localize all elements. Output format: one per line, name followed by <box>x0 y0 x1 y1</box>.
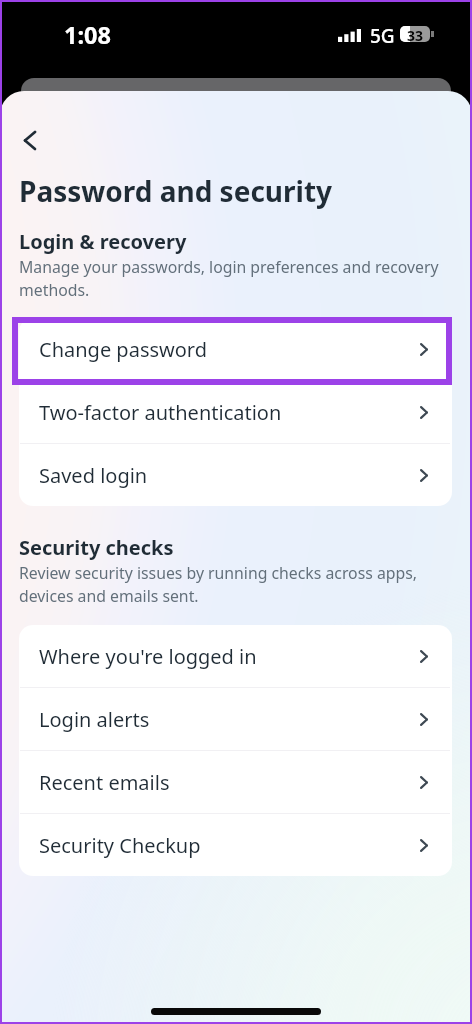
staticText: Password and security <box>19 172 333 210</box>
staticText: Review security issues by running checks… <box>19 562 418 606</box>
button[interactable]: Security Checkup <box>19 814 452 876</box>
staticText: Where you're logged in <box>39 643 257 670</box>
button[interactable]: Where you're logged in <box>19 625 452 687</box>
button[interactable]: Recent emails <box>19 751 452 813</box>
staticText: 5G <box>370 23 395 49</box>
staticText: Saved login <box>39 462 148 489</box>
staticText: Two-factor authentication <box>39 399 282 426</box>
staticText: 33 <box>403 26 427 45</box>
staticText: Manage your passwords, login preferences… <box>19 256 439 300</box>
staticText: Recent emails <box>39 769 170 796</box>
staticText: Login alerts <box>39 706 150 733</box>
staticText: Login & recovery <box>19 228 187 255</box>
staticText: Change password <box>39 336 208 363</box>
staticText: Security Checkup <box>39 832 201 859</box>
button[interactable]: Back <box>7 117 53 163</box>
button[interactable]: Change password <box>19 318 452 380</box>
button[interactable]: Two-factor authentication <box>19 381 452 443</box>
button[interactable]: Saved login <box>19 444 452 506</box>
staticText: 1:08 <box>64 19 111 51</box>
staticText: Security checks <box>19 534 174 561</box>
button[interactable]: Login alerts <box>19 688 452 750</box>
